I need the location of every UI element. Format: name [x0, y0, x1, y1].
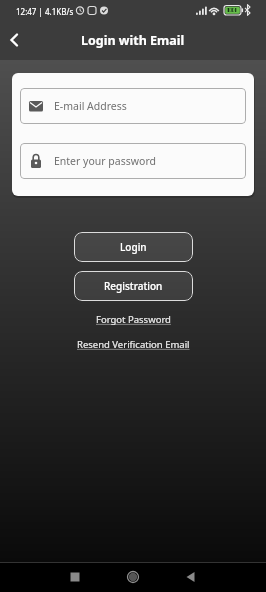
button[interactable]: Login [74, 232, 193, 262]
staticText: 12:47 | 4.1KB/s [16, 6, 74, 17]
button[interactable] [2, 28, 26, 52]
button[interactable]: Registration [74, 271, 193, 301]
staticText: E-mail Address [54, 99, 127, 113]
staticText: Registration [104, 279, 163, 293]
button[interactable]: Forgot Password [96, 313, 171, 326]
button[interactable]: Enter your password [20, 143, 246, 179]
button[interactable] [118, 563, 148, 591]
button[interactable]: Resend Verification Email [77, 338, 190, 351]
staticText: 100 [226, 7, 235, 14]
button[interactable] [176, 563, 206, 591]
button[interactable]: E-mail Address [20, 88, 246, 124]
staticText: Login [120, 240, 147, 254]
staticText: Enter your password [54, 154, 156, 168]
button[interactable] [60, 563, 90, 591]
staticText: Login with Email [81, 32, 185, 49]
